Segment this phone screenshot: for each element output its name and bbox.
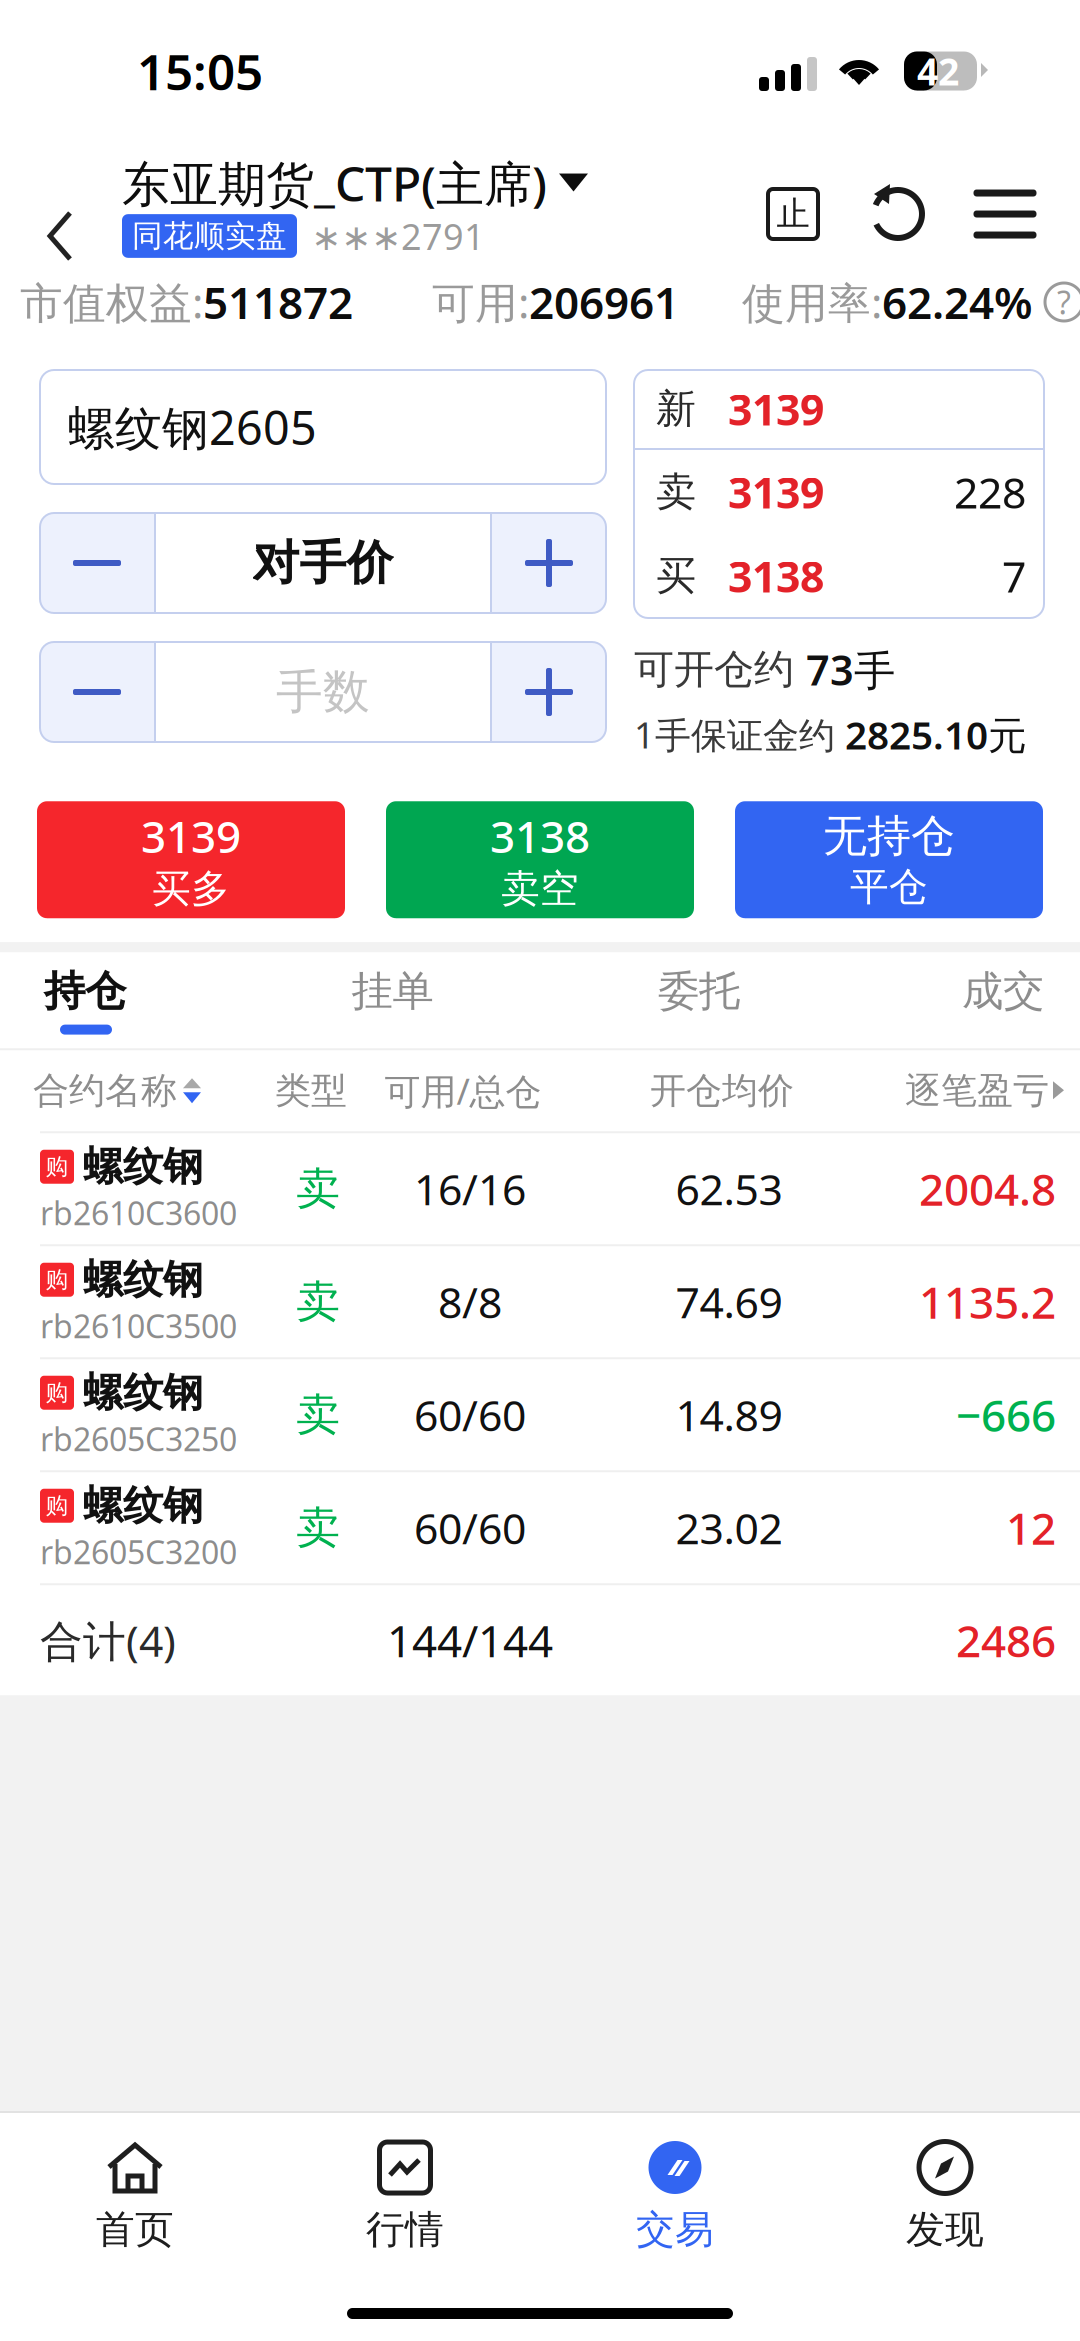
staticText: 卖 xyxy=(296,1501,340,1555)
staticText: rb2610C3500 xyxy=(40,1304,237,1347)
staticText: 2825.10元 xyxy=(845,709,1027,760)
staticText: 卖空 xyxy=(501,865,579,913)
button[interactable]: 挂单 xyxy=(258,951,527,1049)
button[interactable]: Back xyxy=(0,142,122,296)
button[interactable]: 成交 xyxy=(871,951,1080,1049)
staticText: 购 xyxy=(45,1153,68,1181)
staticText: 开仓均价 xyxy=(650,1069,794,1113)
staticText: 买 xyxy=(656,551,696,600)
staticText: 73手 xyxy=(806,642,895,697)
staticText: 7 xyxy=(1002,548,1026,604)
button[interactable]: Increase xyxy=(492,642,606,742)
staticText: 新 xyxy=(656,384,696,433)
button[interactable]: Stop order xyxy=(742,154,844,274)
staticText: 15:05 xyxy=(137,38,263,104)
button[interactable]: 购 xyxy=(0,1359,1080,1472)
staticText: 止 xyxy=(776,193,809,234)
staticText: 14.89 xyxy=(675,1386,782,1443)
button[interactable]: 行情 xyxy=(270,2113,540,2273)
staticText: 62.24% xyxy=(882,273,1033,331)
button[interactable]: 购 xyxy=(0,1246,1080,1359)
staticText: 卖 xyxy=(296,1275,340,1329)
staticText: 螺纹钢 xyxy=(83,1255,203,1304)
button[interactable]: 购 xyxy=(0,1472,1080,1585)
staticText: 511872 xyxy=(203,273,353,331)
button[interactable]: Refresh xyxy=(844,154,952,274)
staticText: 螺纹钢 xyxy=(83,1368,203,1417)
staticText: 可开仓约 xyxy=(634,645,794,694)
staticText: 对手价 xyxy=(252,534,393,592)
staticText: 同花顺实盘 xyxy=(132,217,287,255)
staticText: 3138 xyxy=(490,807,590,865)
button[interactable]: 首页 xyxy=(0,2113,270,2273)
staticText: 2004.8 xyxy=(919,1159,1056,1218)
staticText: 挂单 xyxy=(351,966,433,1017)
staticText: 12 xyxy=(1006,1498,1056,1557)
staticText: 市值权益: xyxy=(20,274,203,330)
staticText: 42 xyxy=(917,46,959,96)
button[interactable]: 持仓 xyxy=(44,951,258,1049)
button[interactable]: Decrease xyxy=(40,513,154,613)
staticText: 购 xyxy=(45,1379,68,1407)
staticText: 买多 xyxy=(152,865,230,913)
staticText: ? xyxy=(1057,281,1071,323)
staticText: 合计(4) xyxy=(40,1612,176,1669)
staticText: 8/8 xyxy=(438,1273,502,1330)
staticText: 类型 xyxy=(275,1069,347,1113)
staticText: 购 xyxy=(45,1266,68,1294)
staticText: 3139 xyxy=(728,464,824,520)
button[interactable]: Decrease xyxy=(40,642,154,742)
staticText: rb2605C3250 xyxy=(40,1417,237,1460)
staticText: 144/144 xyxy=(387,1611,553,1669)
staticText: 3139 xyxy=(728,381,824,437)
staticText: 1135.2 xyxy=(919,1272,1056,1331)
staticText: 交易 xyxy=(636,2206,714,2253)
button[interactable]: Usage rate info xyxy=(1033,274,1080,330)
staticText: 23.02 xyxy=(675,1499,782,1556)
staticText: 螺纹钢 xyxy=(83,1142,203,1191)
staticText: 使用率: xyxy=(742,274,882,330)
button[interactable]: 3138 xyxy=(386,801,694,918)
staticText: 3139 xyxy=(141,807,241,865)
staticText: 螺纹钢 xyxy=(83,1481,203,1530)
staticText: 东亚期货_CTP(主席) xyxy=(122,151,547,215)
staticText: 可用: xyxy=(432,274,529,330)
button[interactable]: 发现 xyxy=(810,2113,1080,2273)
staticText: ∗∗∗2791 xyxy=(311,212,485,260)
staticText: rb2605C3200 xyxy=(40,1530,237,1573)
staticText: 卖 xyxy=(656,467,696,516)
button[interactable]: Increase xyxy=(492,513,606,613)
staticText: 合约名称 xyxy=(33,1069,177,1113)
staticText: 1手保证金约 xyxy=(634,711,835,758)
staticText: 卖 xyxy=(296,1388,340,1442)
staticText: 无持仓 xyxy=(823,809,955,863)
button[interactable]: Menu xyxy=(952,154,1058,274)
staticText: 螺纹钢2605 xyxy=(68,396,317,458)
button[interactable]: 交易 xyxy=(540,2113,810,2273)
staticText: 委托 xyxy=(658,966,740,1017)
staticText: 74.69 xyxy=(675,1273,782,1330)
staticText: 手数 xyxy=(276,663,370,721)
staticText: 卖 xyxy=(296,1162,340,1216)
staticText: 60/60 xyxy=(414,1499,526,1556)
button[interactable]: 购 xyxy=(0,1133,1080,1246)
button[interactable]: 无持仓 xyxy=(735,801,1043,918)
staticText: 2486 xyxy=(956,1611,1056,1669)
staticText: 可用/总仓 xyxy=(384,1067,541,1115)
staticText: 首页 xyxy=(96,2206,174,2253)
staticText: 16/16 xyxy=(414,1160,526,1217)
button[interactable]: 3139 xyxy=(37,801,345,918)
staticText: 62.53 xyxy=(675,1160,782,1217)
staticText: 行情 xyxy=(366,2206,444,2253)
staticText: 成交 xyxy=(962,966,1044,1017)
staticText: 平仓 xyxy=(850,863,928,910)
staticText: 228 xyxy=(954,464,1026,520)
staticText: 持仓 xyxy=(44,966,126,1017)
staticText: 逐笔盈亏 xyxy=(905,1069,1049,1113)
staticText: 206961 xyxy=(529,273,679,331)
staticText: rb2610C3600 xyxy=(40,1191,237,1234)
staticText: 发现 xyxy=(906,2206,984,2253)
button[interactable]: 委托 xyxy=(527,951,871,1049)
staticText: 60/60 xyxy=(414,1386,526,1443)
staticText: 3138 xyxy=(728,548,824,604)
